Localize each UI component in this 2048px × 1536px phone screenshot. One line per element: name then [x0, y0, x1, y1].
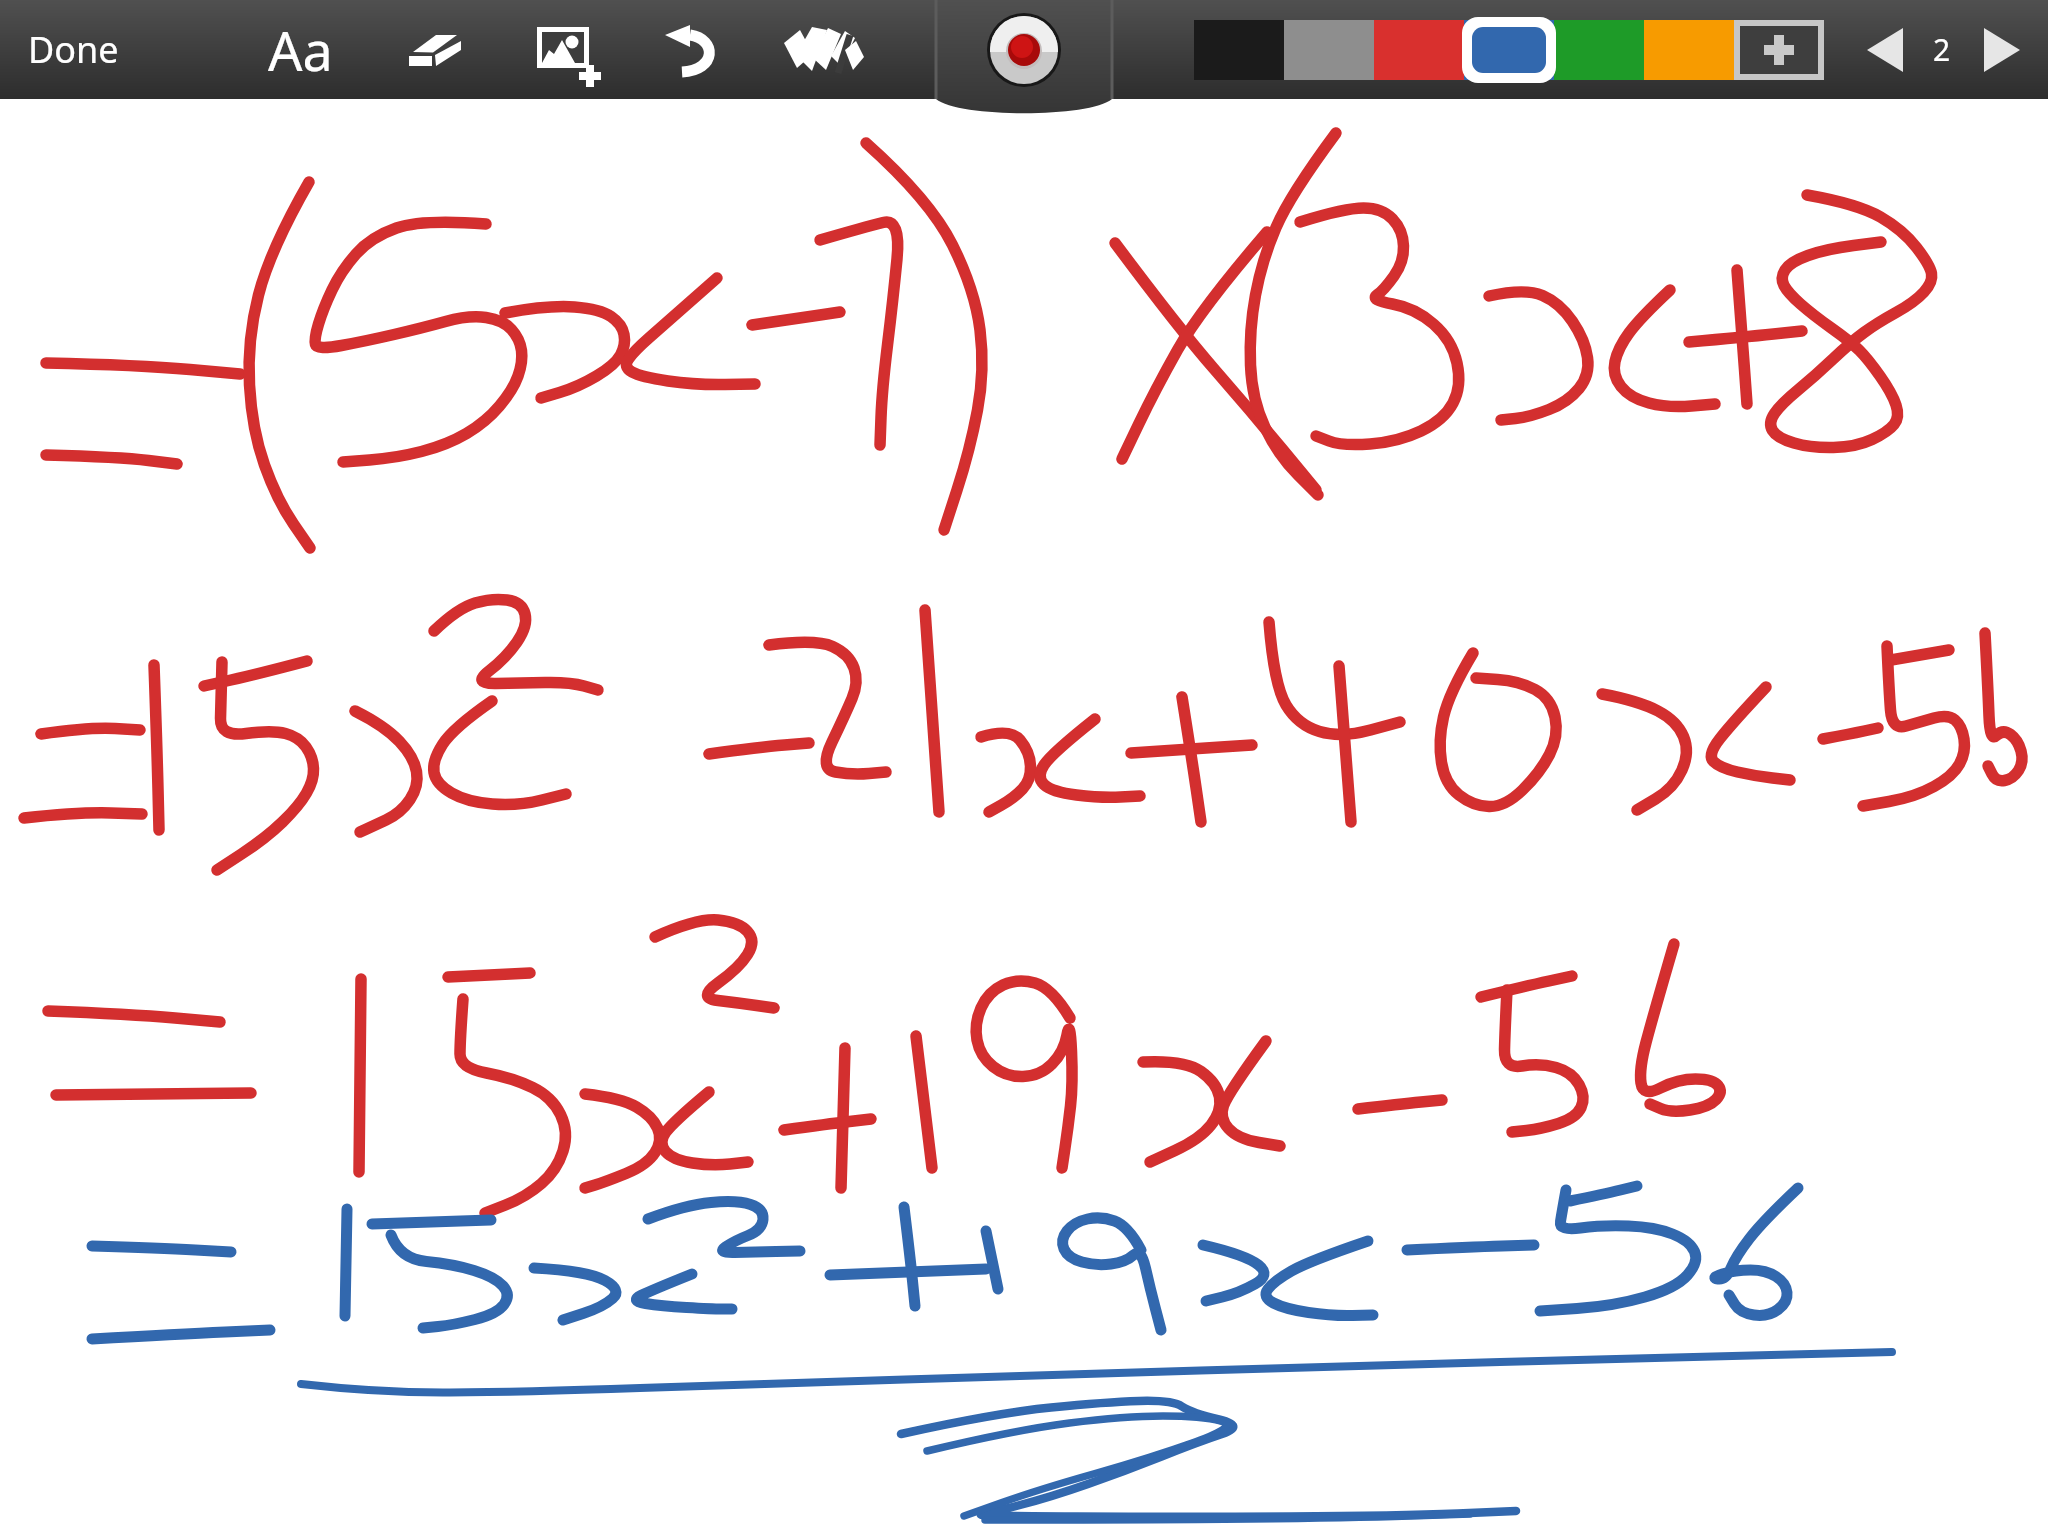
button[interactable]: Previous page — [1855, 0, 1915, 99]
button[interactable]: Aa — [240, 0, 360, 99]
staticText: Done — [28, 25, 119, 74]
button[interactable]: Insert image — [512, 0, 622, 99]
staticText: 2 — [1933, 29, 1951, 70]
button[interactable]: Blue colour — [1464, 20, 1554, 80]
button[interactable]: Undo — [650, 0, 730, 99]
button[interactable]: Done — [0, 0, 146, 99]
button[interactable]: Add colour — [1734, 20, 1824, 80]
staticText: Aa — [268, 13, 333, 87]
button[interactable]: Record — [936, 0, 1112, 99]
button[interactable]: Pen — [768, 0, 878, 99]
button[interactable]: Next page — [1972, 0, 2032, 99]
button[interactable]: Red colour — [1374, 20, 1464, 80]
button[interactable]: Green colour — [1554, 20, 1644, 80]
button[interactable]: Eraser — [389, 0, 481, 99]
